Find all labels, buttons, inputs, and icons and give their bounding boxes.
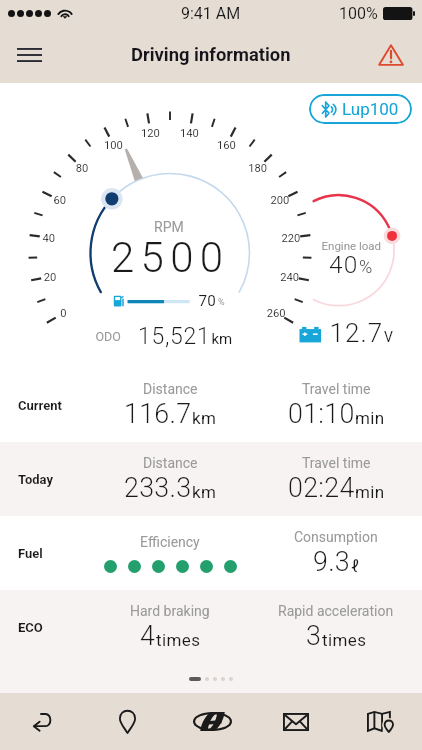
staticText: Consumption	[294, 529, 378, 545]
staticText: ECO	[18, 620, 87, 635]
staticText: 100%	[339, 4, 378, 23]
button[interactable]: Fuel	[0, 516, 422, 590]
staticText: km	[192, 482, 217, 502]
staticText: min	[355, 408, 385, 428]
staticText: 4	[140, 620, 156, 651]
staticText: Hard braking	[130, 603, 210, 619]
staticText: ℓ	[351, 556, 360, 576]
button[interactable]: ECO	[0, 590, 422, 664]
staticText: Efficiency	[140, 534, 200, 550]
staticText: Fuel	[18, 546, 87, 561]
staticText: Travel time	[302, 455, 371, 471]
staticText: km	[192, 408, 217, 428]
button[interactable]: Lup100	[309, 94, 412, 124]
staticText: Lup100	[342, 99, 399, 119]
staticText: Travel time	[302, 381, 371, 397]
staticText: 9.3	[313, 546, 351, 577]
staticText: 9:41 AM	[181, 4, 241, 23]
staticText: min	[355, 482, 385, 502]
staticText: 3	[306, 620, 322, 651]
staticText: Distance	[143, 381, 198, 397]
button[interactable]: Back	[0, 693, 85, 750]
staticText: Current	[18, 398, 87, 413]
button[interactable]: Messages	[254, 693, 338, 750]
staticText: times	[322, 630, 367, 650]
staticText: Today	[18, 472, 87, 487]
button[interactable]: Warning	[368, 32, 414, 78]
staticText: Distance	[143, 455, 198, 471]
staticText: 02:24	[288, 472, 355, 503]
button[interactable]: Home	[170, 693, 254, 750]
button[interactable]: Places	[85, 693, 170, 750]
button[interactable]: Menu	[4, 30, 54, 80]
staticText: 233.3	[124, 472, 192, 503]
button[interactable]: Map	[338, 693, 422, 750]
staticText: times	[156, 630, 201, 650]
staticText: 01:10	[288, 398, 355, 429]
staticText: 116.7	[124, 398, 192, 429]
button[interactable]: Today	[0, 442, 422, 516]
staticText: Driving information	[131, 44, 291, 66]
staticText: Rapid acceleration	[278, 603, 394, 619]
button[interactable]: Current	[0, 368, 422, 442]
